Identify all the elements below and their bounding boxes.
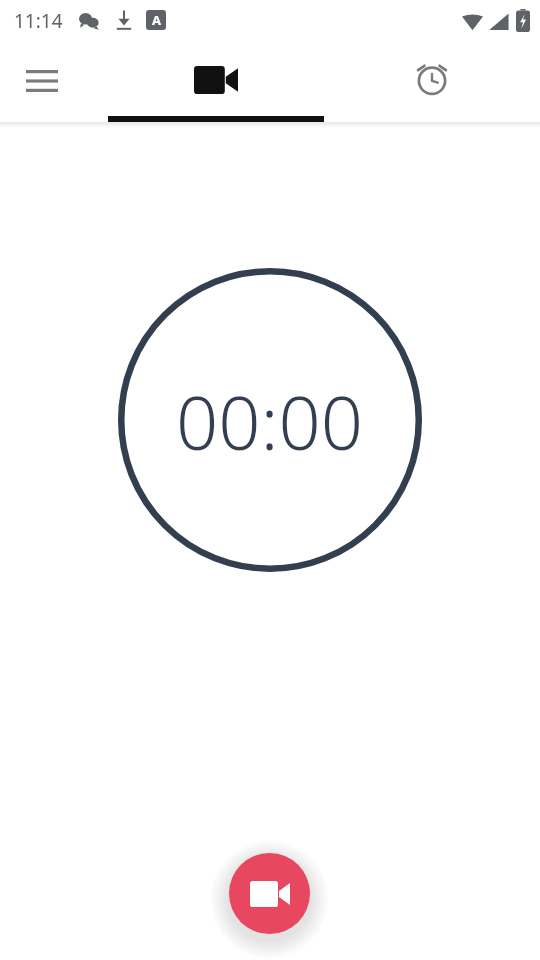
button[interactable]: Start recording	[229, 853, 310, 934]
staticText: A	[152, 11, 161, 29]
button[interactable]: Open navigation menu	[6, 54, 78, 108]
staticText: 00:00	[176, 371, 364, 472]
button[interactable]: Alarms tab	[396, 40, 468, 122]
button[interactable]: Recording timer	[118, 268, 422, 572]
staticText: 11:14	[14, 8, 63, 34]
button[interactable]: Recorder tab	[108, 40, 324, 122]
